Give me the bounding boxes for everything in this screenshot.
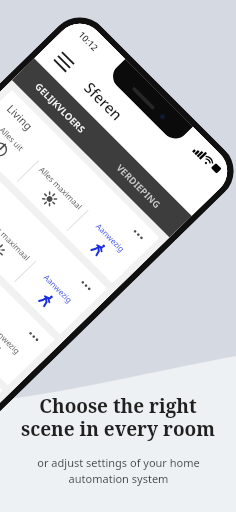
button[interactable]: Aanwezig — [0, 309, 37, 386]
button[interactable]: Aanwezig — [63, 207, 141, 284]
staticText: Aanwezig — [93, 220, 128, 254]
staticText: Alles maximaal — [0, 215, 33, 263]
button[interactable]: More options — [21, 324, 47, 349]
button[interactable]: VERDIEPING — [87, 134, 192, 238]
staticText: Living — [4, 101, 37, 133]
staticText: Aanwezig — [41, 271, 75, 305]
button[interactable]: Alles uit — [0, 108, 42, 185]
button[interactable]: Living — [0, 89, 161, 284]
button[interactable]: GELIJKVLOERS — [11, 58, 110, 156]
button[interactable]: Open navigation menu — [48, 46, 80, 77]
button[interactable]: Aanwezig — [11, 258, 89, 335]
staticText: VERDIEPING — [114, 161, 164, 211]
button[interactable]: More options — [73, 273, 99, 298]
button[interactable]: Alles maximaal — [14, 157, 92, 234]
button[interactable]: Badkamer — [0, 242, 4, 437]
staticText: 10:12 — [76, 28, 102, 54]
staticText: GELIJKVLOERS — [33, 80, 89, 135]
staticText: Sferen — [80, 77, 128, 125]
button[interactable]: More options — [125, 222, 151, 247]
button[interactable]: Keuken — [0, 191, 56, 386]
staticText: Choose the right scene in every room — [21, 393, 215, 442]
staticText: or adjust settings of your home automati… — [37, 455, 200, 486]
button[interactable]: Alles maximaal — [0, 208, 39, 285]
staticText: Alles uit — [0, 124, 27, 153]
staticText: Alles maximaal — [37, 164, 85, 212]
staticText: Aanwezig — [0, 322, 23, 356]
button[interactable]: Inkomhal — [0, 140, 108, 335]
